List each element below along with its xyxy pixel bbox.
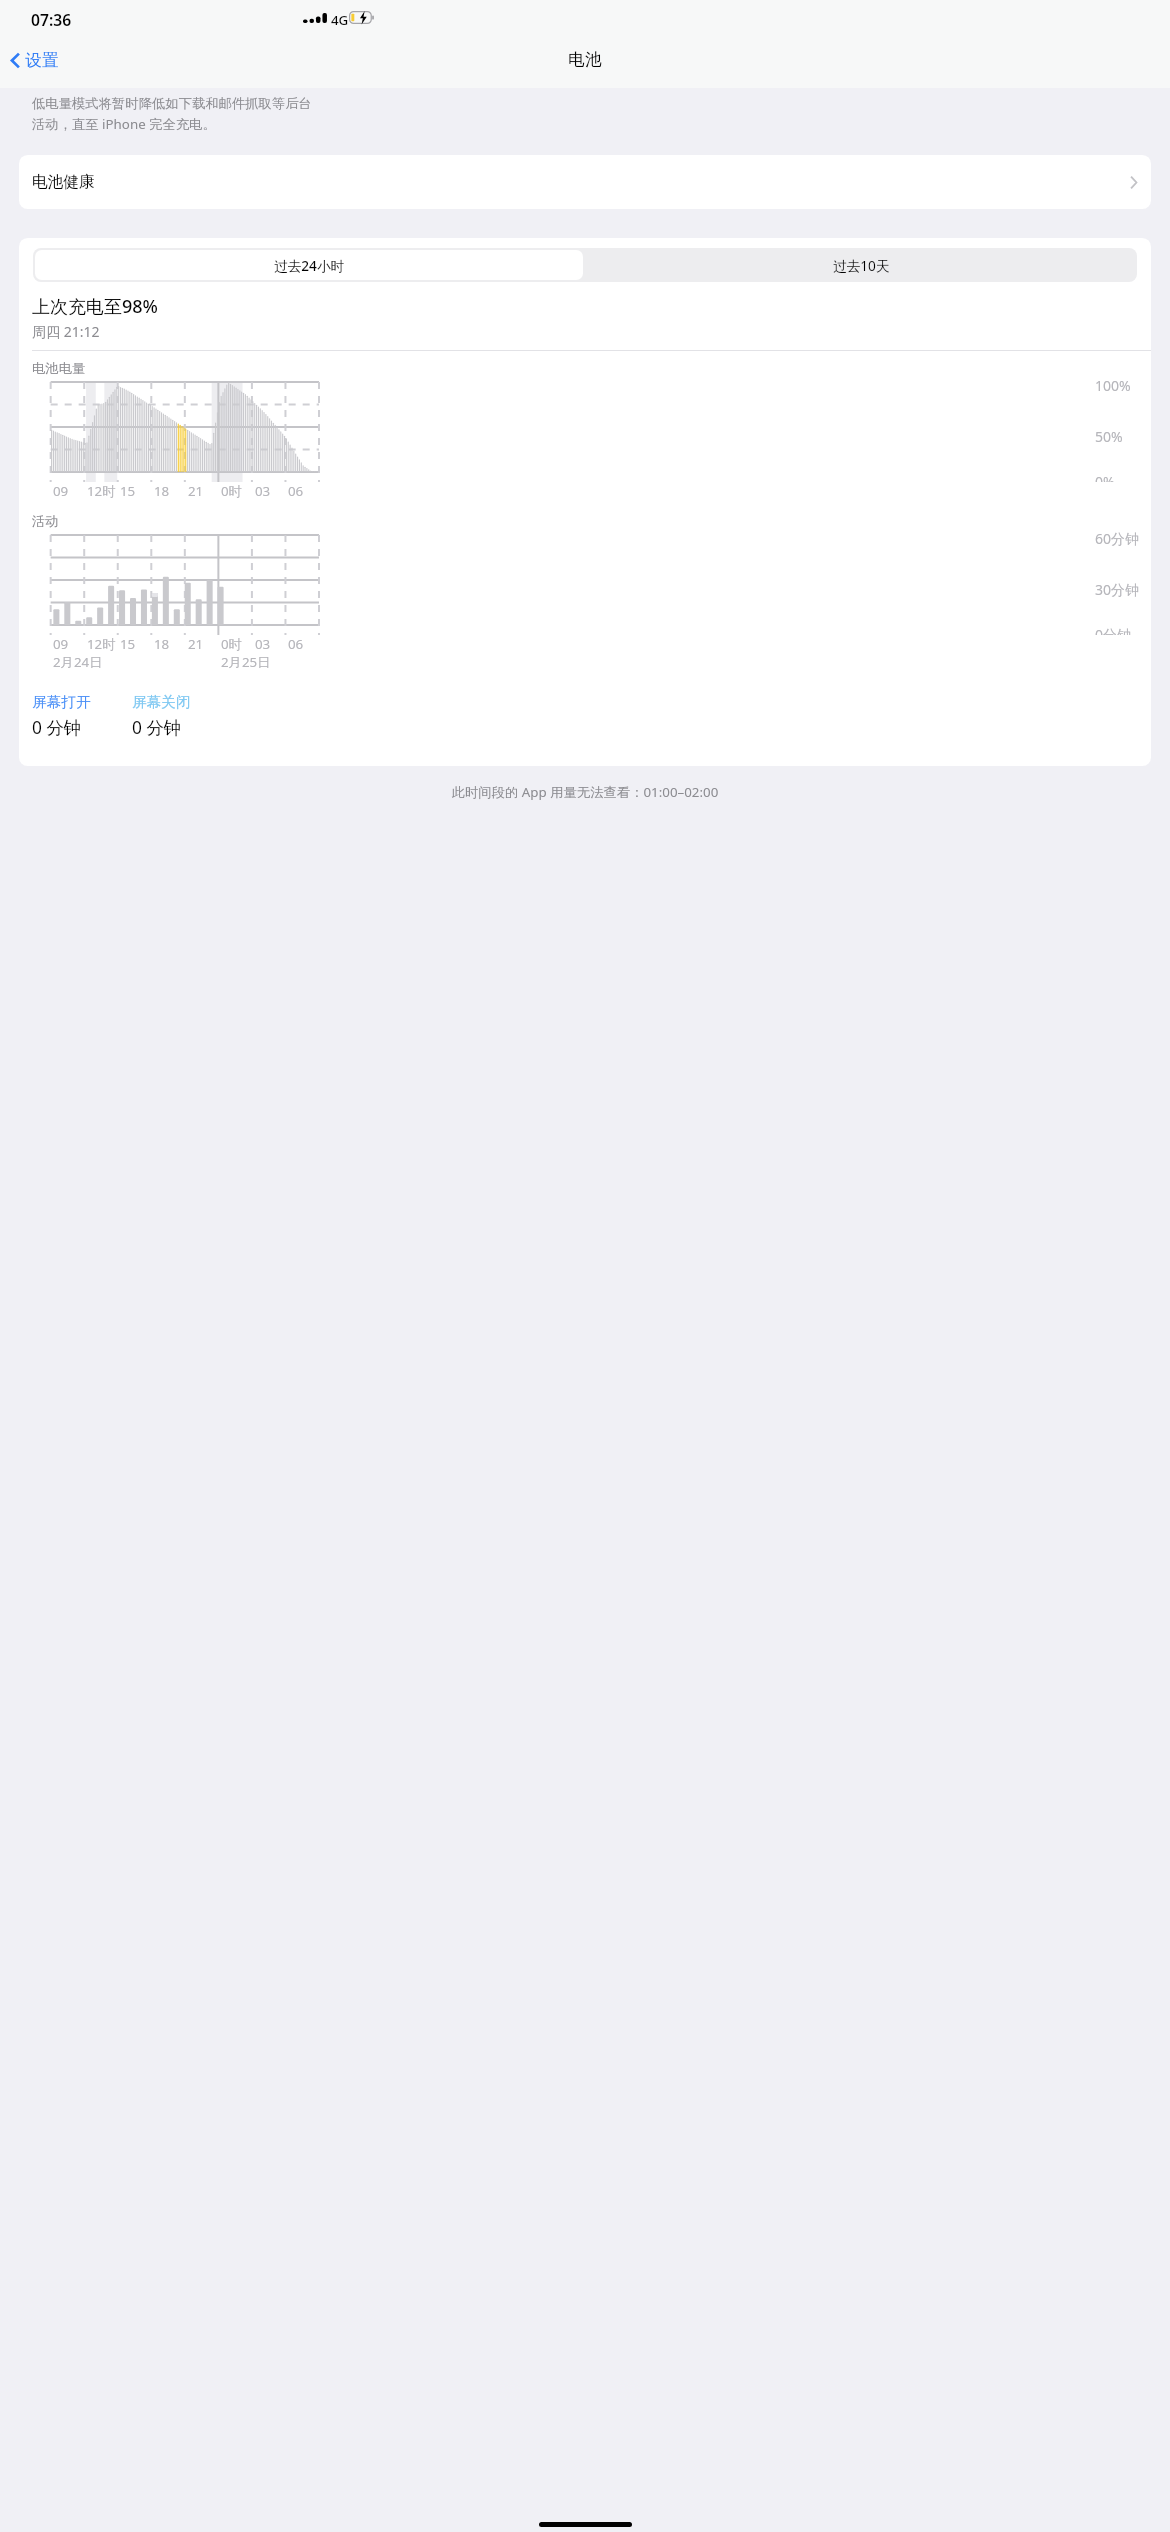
staticText: 50% xyxy=(1095,427,1123,446)
staticText: 0时 xyxy=(221,482,242,498)
button[interactable]: 设置 xyxy=(7,47,63,74)
staticText: 上次充电至98% xyxy=(32,294,158,319)
staticText: 30分钟 xyxy=(1095,580,1140,599)
staticText: 60分钟 xyxy=(1095,529,1140,548)
button[interactable]: 电池健康 xyxy=(19,155,1151,209)
staticText: 06 xyxy=(288,482,304,498)
staticText: 屏幕打开 xyxy=(32,693,91,711)
staticText: 21 xyxy=(188,482,204,498)
staticText: 21 xyxy=(188,635,204,651)
other: Battery charging xyxy=(349,11,375,24)
staticText: 09 xyxy=(53,635,69,651)
staticText: 设置 xyxy=(25,50,59,71)
button[interactable]: 屏幕关闭 xyxy=(132,693,239,739)
staticText: 活动 xyxy=(32,513,59,530)
staticText: 周四 21:12 xyxy=(32,322,100,341)
staticText: 100% xyxy=(1095,376,1131,395)
staticText: 2月24日 xyxy=(53,653,103,671)
staticText: 0 分钟 xyxy=(132,715,182,739)
staticText: 12时 xyxy=(87,635,116,651)
staticText: 09 xyxy=(53,482,69,498)
staticText: 18 xyxy=(154,635,170,651)
staticText: 06 xyxy=(288,635,304,651)
staticText: 电池 xyxy=(0,49,1170,70)
staticText: 电池健康 xyxy=(32,172,95,192)
button[interactable]: 过去24小时 xyxy=(35,250,583,280)
staticText: 电池电量 xyxy=(32,360,86,377)
button[interactable]: 过去10天 xyxy=(585,248,1137,282)
staticText: 活动，直至 iPhone 完全充电。 xyxy=(32,115,216,133)
staticText: 0分钟 xyxy=(1095,625,1132,635)
staticText: 低电量模式将暂时降低如下载和邮件抓取等后台 xyxy=(32,95,312,112)
staticText: 2月25日 xyxy=(221,653,271,671)
staticText: 0时 xyxy=(221,635,242,651)
staticText: 0% xyxy=(1095,472,1115,482)
staticText: 屏幕关闭 xyxy=(132,693,191,711)
staticText: 15 xyxy=(120,482,136,498)
staticText: 过去24小时 xyxy=(274,256,345,275)
staticText: 12时 xyxy=(87,482,116,498)
staticText: 此时间段的 App 用量无法查看：01:00–02:00 xyxy=(0,783,1170,801)
staticText: 07:36 xyxy=(31,9,72,30)
other: Cellular signal strength xyxy=(303,13,328,23)
staticText: 4G xyxy=(331,11,349,29)
staticText: 18 xyxy=(154,482,170,498)
staticText: 0 分钟 xyxy=(32,715,82,739)
button[interactable]: 屏幕打开 xyxy=(32,693,132,739)
staticText: 15 xyxy=(120,635,136,651)
staticText: 03 xyxy=(255,482,271,498)
staticText: 03 xyxy=(255,635,271,651)
staticText: 过去10天 xyxy=(833,256,890,275)
